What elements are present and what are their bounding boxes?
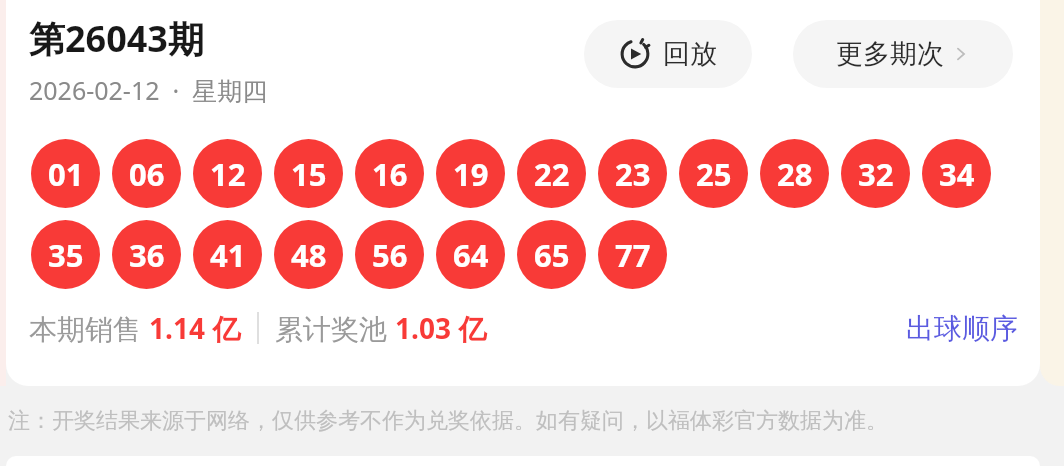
button[interactable]: 36 — [112, 220, 181, 289]
staticText: 01 — [48, 153, 84, 195]
button[interactable]: 28 — [760, 139, 829, 208]
staticText: 16 — [372, 153, 408, 195]
staticText: 第26043期 — [29, 14, 204, 63]
staticText: 注：开奖结果来源于网络，仅供参考不作为兑奖依据。如有疑问，以福体彩官方数据为准。 — [8, 407, 888, 435]
staticText: 35 — [48, 234, 84, 276]
staticText: 56 — [372, 234, 408, 276]
staticText: 1.03 亿 — [395, 309, 487, 347]
button[interactable]: 77 — [598, 220, 667, 289]
button[interactable]: Replay — [584, 20, 752, 88]
staticText: 22 — [534, 153, 570, 195]
staticText: 累计奖池 — [275, 309, 395, 347]
staticText: 28 — [777, 153, 813, 195]
staticText: 34 — [939, 153, 975, 195]
staticText: 1.14 亿 — [149, 309, 241, 347]
button[interactable]: 12 — [193, 139, 262, 208]
button[interactable]: 23 — [598, 139, 667, 208]
staticText: 25 — [696, 153, 732, 195]
button[interactable]: 更多期次 — [793, 20, 1013, 88]
button[interactable]: 06 — [112, 139, 181, 208]
staticText: 41 — [210, 234, 246, 276]
staticText: 2026-02-12 · 星期四 — [29, 73, 268, 107]
staticText: 23 — [615, 153, 651, 195]
staticText: 本期销售 — [29, 309, 149, 347]
staticText: 06 — [129, 153, 165, 195]
button[interactable]: 16 — [355, 139, 424, 208]
staticText: 36 — [129, 234, 165, 276]
staticText: 12 — [210, 153, 246, 195]
button[interactable]: 65 — [517, 220, 586, 289]
button[interactable]: 15 — [274, 139, 343, 208]
button[interactable]: 56 — [355, 220, 424, 289]
staticText: 更多期次 — [836, 37, 944, 71]
button[interactable]: 22 — [517, 139, 586, 208]
button[interactable]: 35 — [31, 220, 100, 289]
button[interactable]: 25 — [679, 139, 748, 208]
staticText: 19 — [453, 153, 489, 195]
button[interactable]: 48 — [274, 220, 343, 289]
staticText: 出球顺序 — [906, 311, 1018, 346]
staticText: 32 — [858, 153, 894, 195]
button[interactable]: 出球顺序 — [902, 307, 1022, 350]
button[interactable]: 32 — [841, 139, 910, 208]
staticText: 48 — [291, 234, 327, 276]
button[interactable]: 64 — [436, 220, 505, 289]
staticText: 77 — [615, 234, 651, 276]
button[interactable]: 34 — [922, 139, 991, 208]
staticText: 64 — [453, 234, 489, 276]
staticText: 回放 — [663, 37, 717, 71]
button[interactable]: 01 — [31, 139, 100, 208]
button[interactable]: 41 — [193, 220, 262, 289]
staticText: 65 — [534, 234, 570, 276]
button[interactable]: 19 — [436, 139, 505, 208]
other: Replay — [619, 38, 651, 70]
staticText: 15 — [291, 153, 327, 195]
